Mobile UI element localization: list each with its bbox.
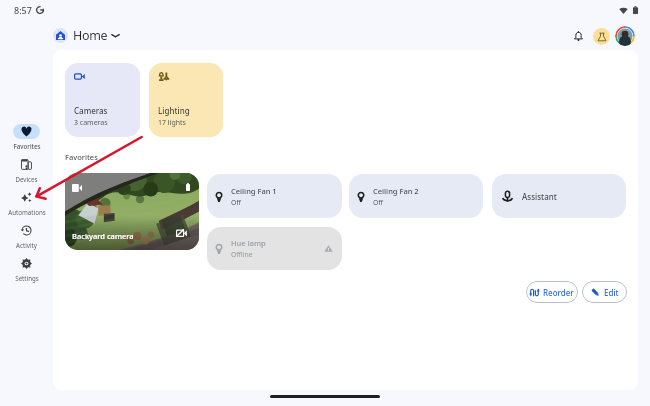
staticText: Ceiling Fan 2 (373, 186, 419, 196)
staticText: Automations (8, 208, 46, 216)
button[interactable]: Edit (582, 281, 627, 303)
staticText: Edit (604, 287, 619, 298)
staticText: Home (73, 27, 108, 44)
staticText: 17 lights (158, 118, 186, 128)
button[interactable]: Account (615, 26, 635, 46)
staticText: Settings (15, 274, 39, 282)
button[interactable]: Lighting (149, 63, 223, 137)
other: Camera off (176, 228, 187, 238)
staticText: Reorder (543, 287, 574, 298)
staticText: Offline (231, 250, 253, 259)
staticText: Lighting (158, 105, 190, 116)
button[interactable]: Settings (0, 256, 53, 282)
button[interactable]: Automations (0, 190, 53, 216)
button[interactable]: Ceiling Fan 1 (207, 174, 342, 218)
button[interactable]: Ceiling Fan 2 (349, 174, 483, 218)
staticText: Off (373, 198, 383, 207)
button[interactable]: Home (51, 25, 123, 46)
staticText: Backyard camera (72, 231, 134, 241)
staticText: Hue lamp (231, 238, 266, 248)
button[interactable]: Experiments (593, 28, 610, 45)
button[interactable]: Notifications (568, 26, 588, 46)
staticText: Cameras (74, 105, 108, 116)
staticText: Assistant (522, 191, 557, 202)
staticText: Off (231, 198, 241, 207)
staticText: 3 cameras (74, 118, 108, 128)
button[interactable]: Activity (0, 223, 53, 249)
button[interactable]: Backyard camera (65, 173, 199, 250)
staticText: Activity (16, 241, 37, 249)
staticText: Favorites (13, 142, 41, 150)
staticText: 8:57 (14, 4, 32, 16)
button[interactable]: Reorder (526, 281, 578, 303)
button[interactable]: Favorites (0, 124, 53, 150)
staticText: Devices (15, 175, 38, 183)
button[interactable]: Hue lamp (207, 227, 342, 270)
staticText: Ceiling Fan 1 (231, 186, 277, 196)
button[interactable]: Devices (0, 157, 53, 183)
button[interactable]: Cameras (65, 63, 140, 137)
button[interactable]: Assistant (492, 174, 626, 218)
staticText: Favorites (65, 152, 98, 162)
